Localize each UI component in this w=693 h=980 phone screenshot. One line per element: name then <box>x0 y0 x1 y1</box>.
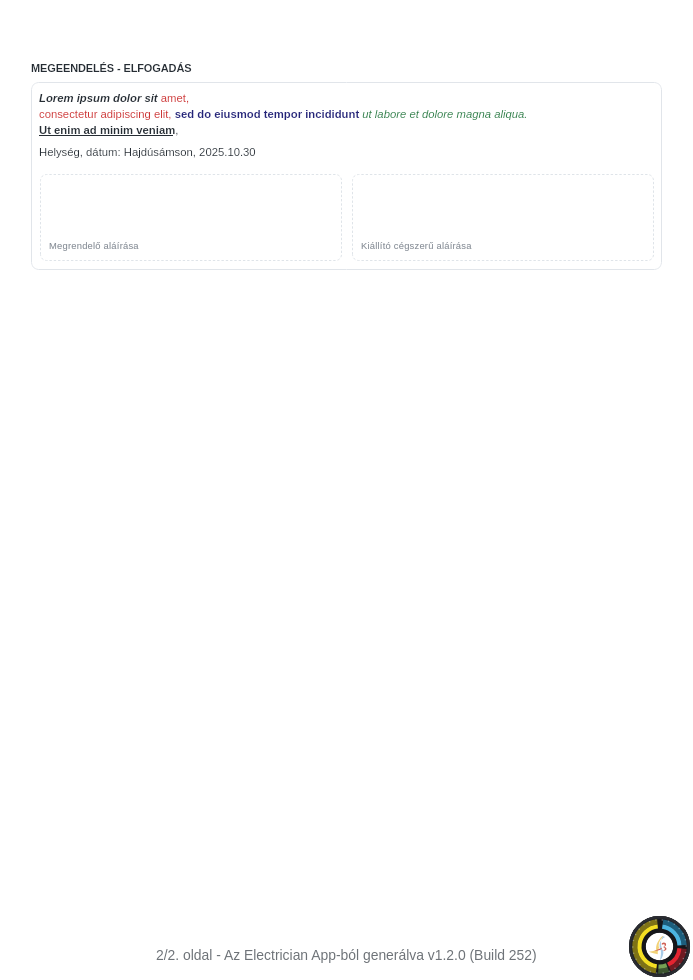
other: Electrician App logo <box>629 916 690 977</box>
staticText: Megrendelő aláírása <box>49 240 139 251</box>
button[interactable]: Kiállító cégszerű aláírása <box>352 174 654 261</box>
staticText: Kiállító cégszerű aláírása <box>361 240 472 251</box>
staticText: 2/2. oldal - Az Electrician App-ból gene… <box>156 947 537 963</box>
staticText: Helység, dátum: Hajdúsámson, 2025.10.30 <box>39 146 256 159</box>
button[interactable]: Lorem ipsum dolor sit amet, consectetur … <box>31 82 662 270</box>
button[interactable]: Megrendelő aláírása <box>40 174 342 261</box>
staticText: MEGEENDELÉS - ELFOGADÁS <box>31 62 192 74</box>
staticText: Lorem ipsum dolor sit amet, consectetur … <box>39 92 528 136</box>
